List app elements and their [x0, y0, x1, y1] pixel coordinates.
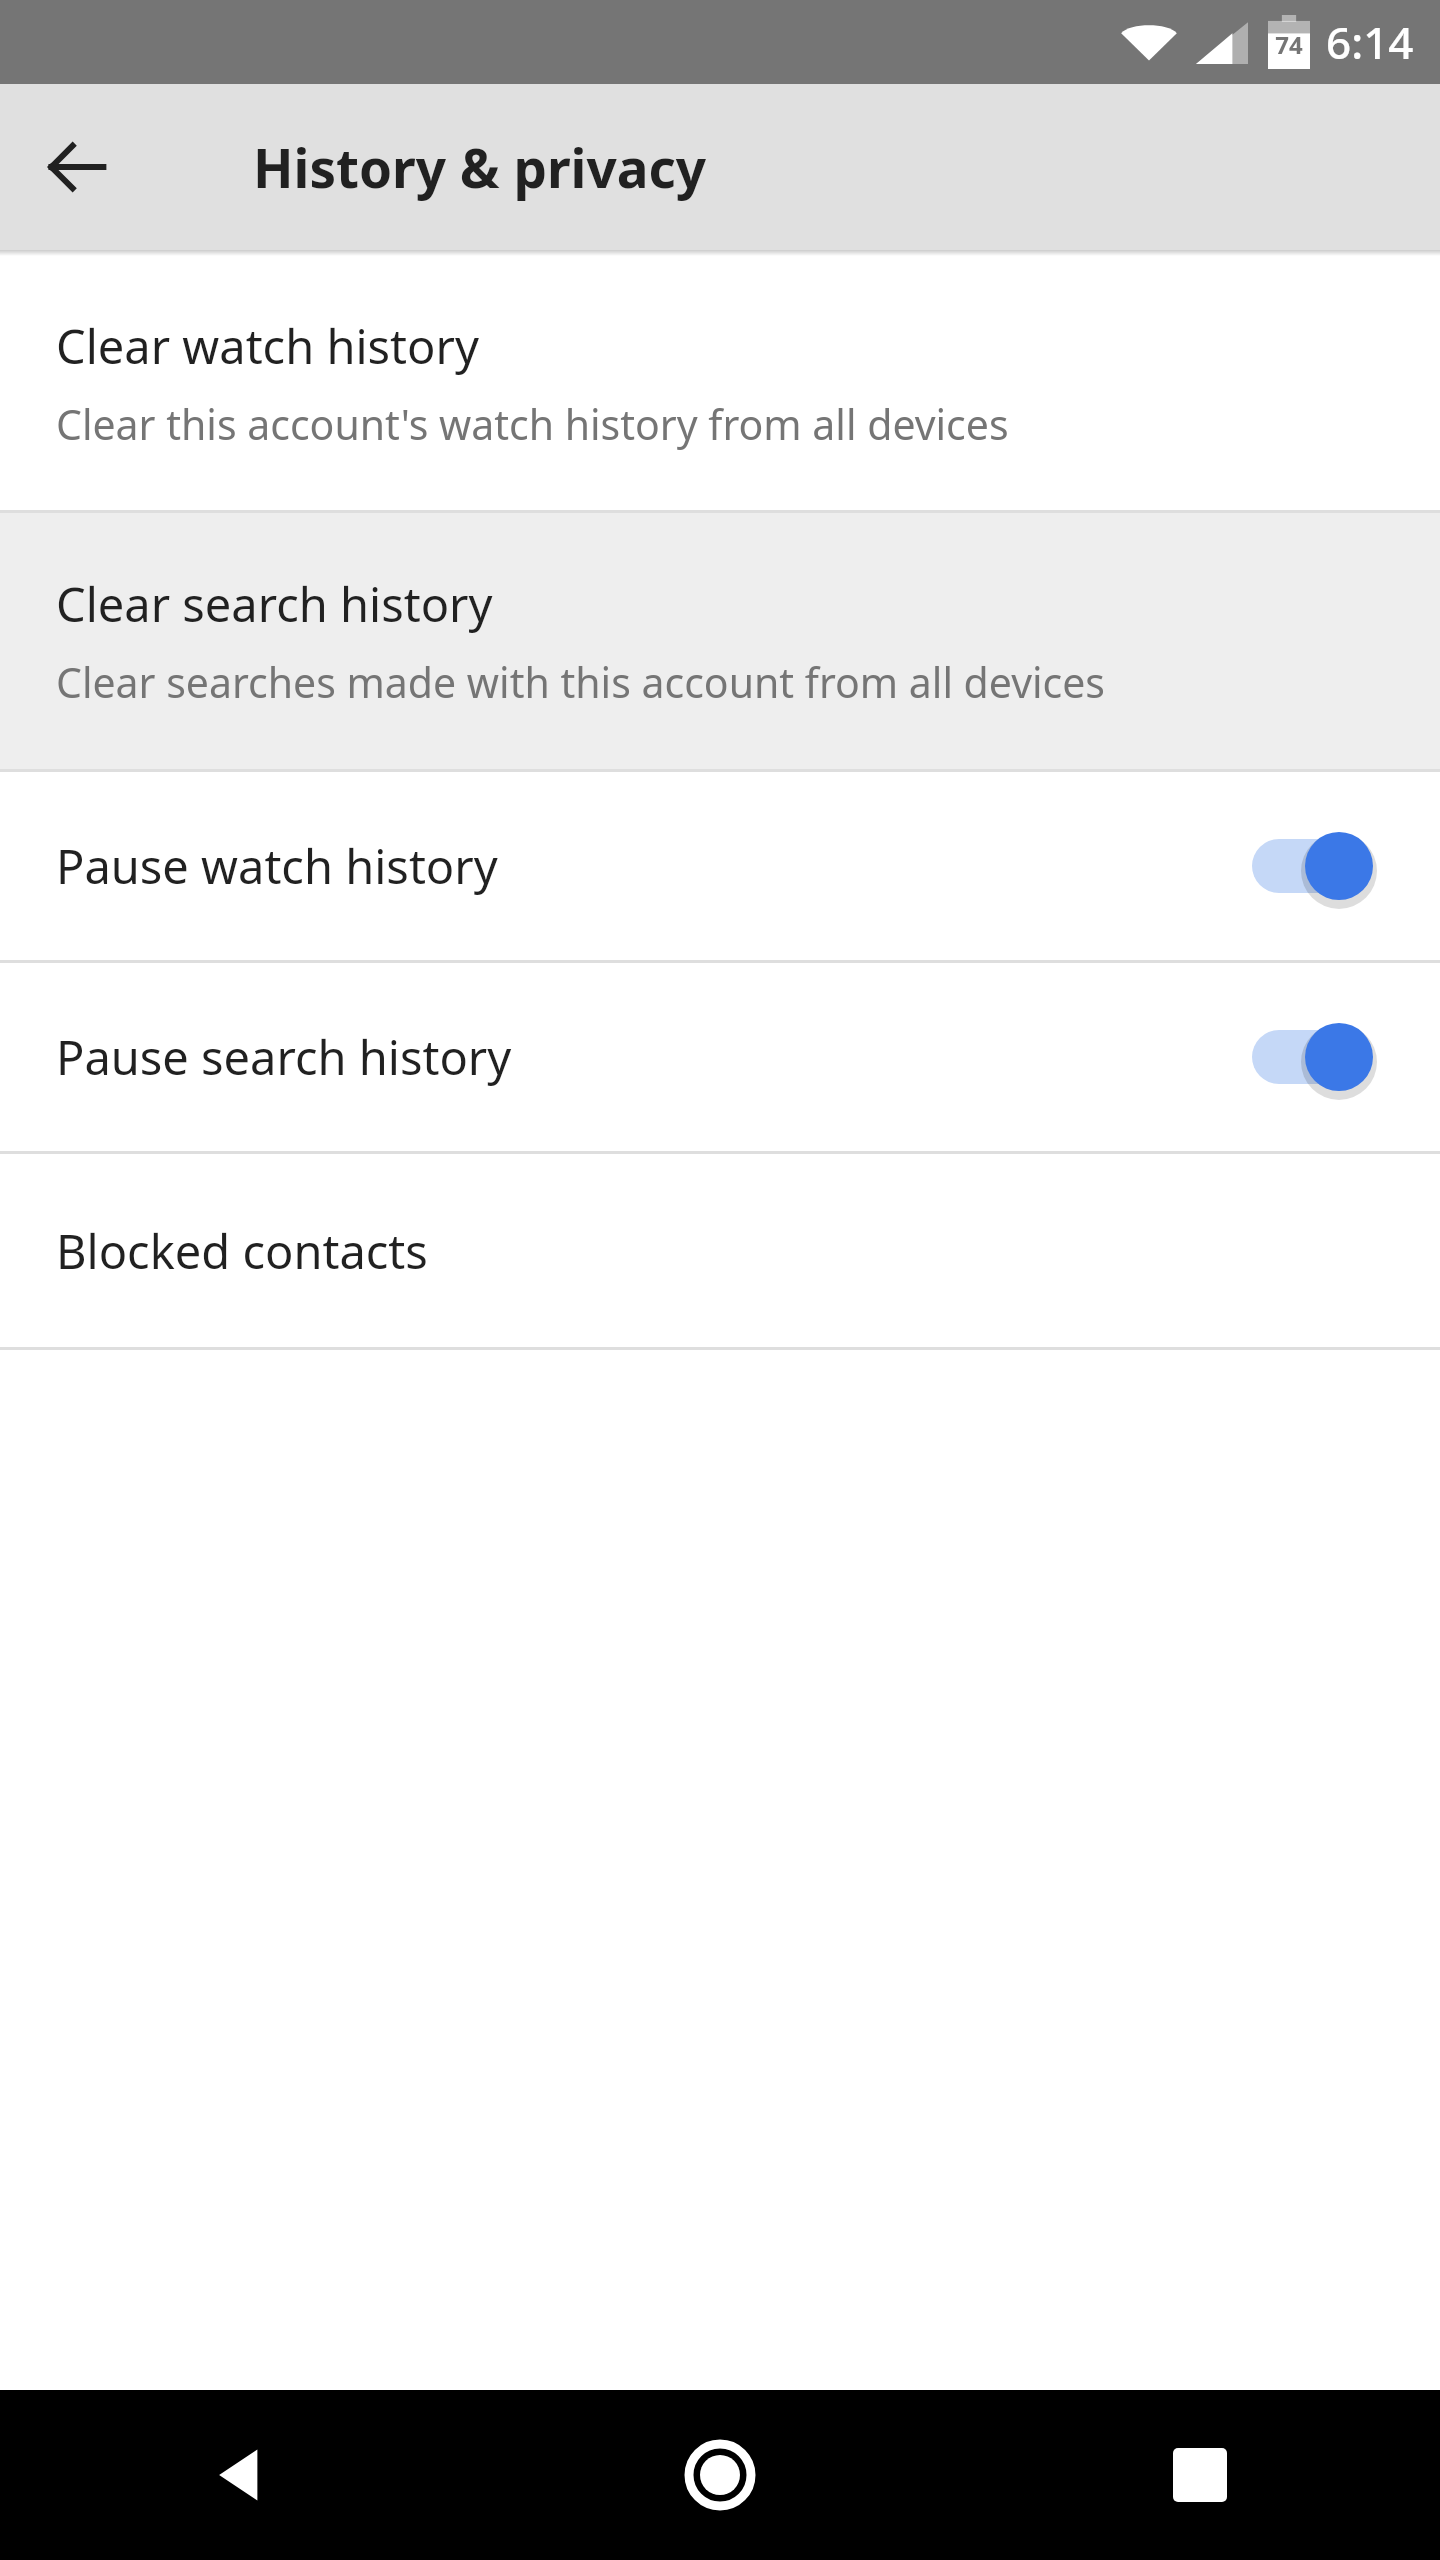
- staticText: Clear this account's watch history from …: [56, 396, 1009, 452]
- staticText: 74: [1275, 28, 1303, 61]
- button[interactable]: Blocked contacts: [0, 1154, 1440, 1347]
- button[interactable]: Recent apps: [960, 2390, 1440, 2560]
- button[interactable]: Back: [28, 119, 124, 215]
- staticText: Clear watch history: [56, 314, 479, 378]
- other: Toggle on: [1250, 1020, 1374, 1094]
- staticText: Blocked contacts: [56, 1219, 428, 1283]
- button[interactable]: Pause watch history: [0, 772, 1440, 960]
- button[interactable]: Clear watch history: [0, 256, 1440, 510]
- other: Toggle on: [1250, 829, 1374, 903]
- button[interactable]: Clear search history: [0, 513, 1440, 769]
- button[interactable]: Home: [480, 2390, 960, 2560]
- staticText: 6:14: [1326, 12, 1414, 72]
- button[interactable]: Pause search history: [0, 963, 1440, 1151]
- staticText: Pause watch history: [56, 834, 1250, 898]
- staticText: Pause search history: [56, 1025, 1250, 1089]
- staticText: History & privacy: [253, 131, 707, 203]
- button[interactable]: Back: [0, 2390, 480, 2560]
- staticText: Clear search history: [56, 572, 493, 636]
- staticText: Clear searches made with this account fr…: [56, 654, 1105, 710]
